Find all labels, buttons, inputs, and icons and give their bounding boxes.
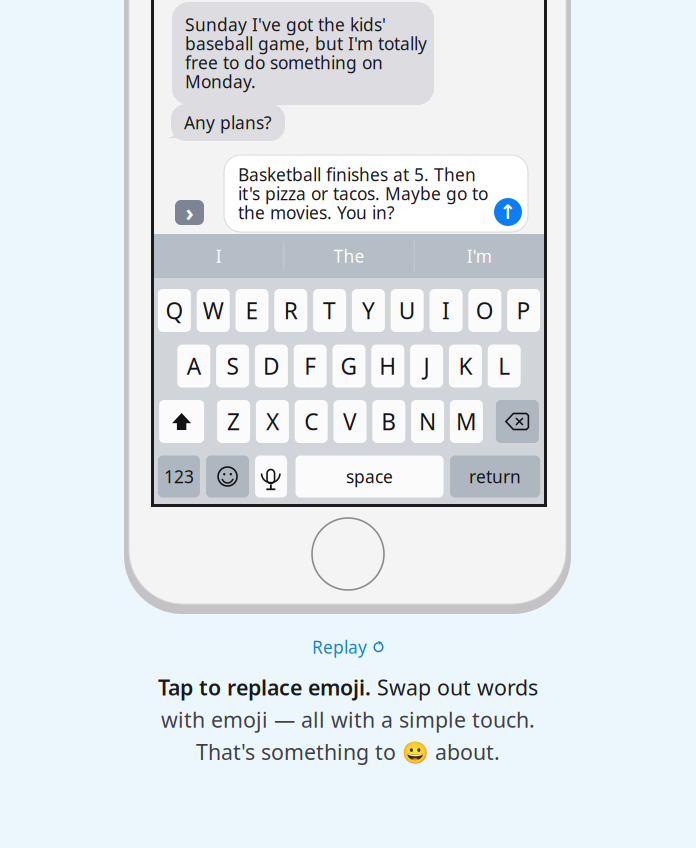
staticText: L [498,351,510,381]
staticText: Y [362,295,375,325]
staticText: Q [165,295,183,325]
staticText: The [333,244,364,267]
staticText: F [304,351,316,381]
staticText: M [456,406,477,436]
staticText: I [442,295,450,325]
staticText: V [343,406,357,436]
button[interactable]: U [391,289,424,332]
staticText: Sunday I've got the kids' baseball game,… [185,13,427,93]
staticText: I [216,244,222,267]
button[interactable]: Show apps [175,200,204,225]
button[interactable]: Replay [304,630,392,663]
button[interactable]: F [294,344,327,387]
button[interactable]: O [468,289,501,332]
button[interactable]: Y [352,289,385,332]
staticText: Z [227,406,240,436]
button[interactable]: V [333,400,366,443]
button[interactable]: L [488,344,521,387]
staticText: K [458,351,472,381]
staticText: D [263,351,280,381]
button[interactable]: R [274,289,307,332]
button[interactable]: Delete [496,400,539,443]
staticText: ↑ [499,201,516,223]
staticText: 123 [164,465,194,488]
staticText: R [284,295,298,325]
staticText: A [187,351,201,381]
staticText: I'm [467,244,492,267]
staticText: Basketball finishes at 5. Then it's pizz… [238,163,488,224]
staticText: O [476,295,494,325]
staticText: Tap to replace emoji. Swap out words [158,673,538,701]
button[interactable]: T [313,289,346,332]
staticText: N [419,406,436,436]
button[interactable]: Dictate [255,455,287,497]
button[interactable]: X [256,400,289,443]
staticText: J [424,351,430,381]
staticText: C [304,406,318,436]
button[interactable]: W [197,289,230,332]
staticText: return [469,465,521,488]
staticText: U [399,295,416,325]
button[interactable]: I'm [415,234,544,278]
button[interactable]: B [372,400,405,443]
button[interactable]: G [332,344,365,387]
staticText: Any plans? [184,111,272,134]
staticText: That's something to 😀 about. [196,738,500,766]
staticText: Replay [312,635,367,658]
staticText: G [340,351,357,381]
button[interactable]: Q [158,289,191,332]
button[interactable]: C [295,400,328,443]
staticText: H [379,351,396,381]
button[interactable]: D [255,344,288,387]
button[interactable]: Shift [159,400,204,443]
button[interactable]: P [507,289,540,332]
button[interactable]: 123 [158,455,200,497]
button[interactable]: A [177,344,210,387]
staticText: space [346,465,393,488]
button[interactable]: space [295,455,443,497]
button[interactable]: return [450,455,540,497]
staticText: S [227,351,239,381]
staticText: X [266,406,279,436]
button[interactable]: Send [494,198,522,226]
button[interactable]: S [216,344,249,387]
staticText: T [323,295,336,325]
button[interactable]: K [449,344,482,387]
button[interactable]: Z [217,400,250,443]
staticText: W [203,295,224,325]
staticText: P [517,295,531,325]
button[interactable]: E [235,289,268,332]
button[interactable]: Emoji [206,455,249,497]
button[interactable]: The [284,234,414,278]
staticText: › [185,197,193,227]
button[interactable]: J [410,344,443,387]
button[interactable]: I [154,234,283,278]
staticText: E [245,295,258,325]
button[interactable]: I [429,289,462,332]
staticText: with emoji — all with a simple touch. [161,705,535,734]
button[interactable]: H [371,344,404,387]
button[interactable]: M [450,400,483,443]
staticText: B [381,406,396,436]
button[interactable]: N [411,400,444,443]
